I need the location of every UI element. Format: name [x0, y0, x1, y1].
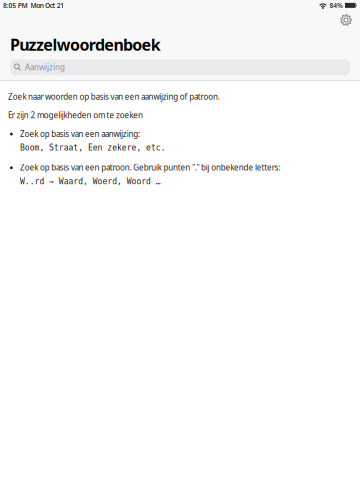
staticText: W..rd → Waard, Woerd, Woord …: [20, 177, 161, 186]
staticText: Boom, Straat, Een zekere, etc.: [20, 143, 166, 152]
button[interactable]: Settings: [335, 11, 357, 29]
staticText: Puzzelwoordenboek: [10, 34, 161, 55]
staticText: Zoek op basis van een aanwijzing:: [20, 128, 140, 139]
staticText: Zoek op basis van een patroon. Gebruik p…: [20, 162, 280, 173]
staticText: Er zijn 2 mogelijkheden om te zoeken: [8, 110, 143, 120]
staticText: 8:05 PM: [3, 1, 27, 10]
staticText: 84%: [330, 1, 343, 10]
staticText: Mon Oct 21: [30, 1, 64, 10]
button[interactable]: Aanwijzing: [10, 59, 350, 75]
staticText: Zoek naar woorden op basis van een aanwi…: [8, 91, 220, 102]
staticText: Aanwijzing: [25, 62, 65, 72]
